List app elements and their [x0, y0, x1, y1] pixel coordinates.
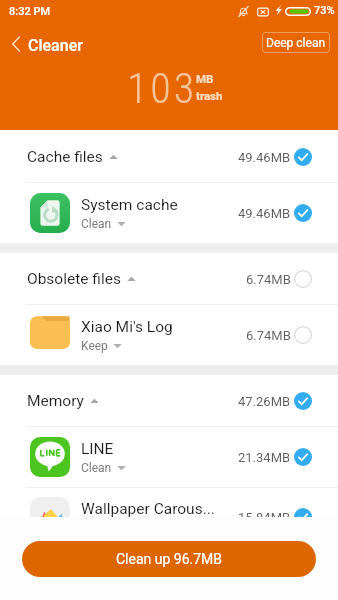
button[interactable]: Clean up 96.7MB [22, 541, 316, 577]
staticText: Clean [81, 461, 112, 475]
staticText: 49.46MB [238, 150, 291, 165]
staticText: Cleaner [28, 36, 83, 55]
button[interactable]: Memory [0, 375, 338, 427]
staticText: LINE [81, 440, 114, 458]
staticText: MB [196, 72, 214, 85]
button[interactable]: Selected [294, 204, 312, 222]
button[interactable]: Selected [294, 392, 312, 410]
button[interactable]: Selected [294, 508, 312, 517]
staticText: 21.34MB [238, 450, 291, 465]
staticText: 47.26MB [238, 394, 291, 409]
staticText: Memory [27, 392, 84, 410]
button[interactable]: Back [2, 24, 30, 64]
button[interactable]: Not selected [294, 270, 312, 288]
staticText: 73% [314, 4, 335, 17]
button[interactable]: Not selected [294, 326, 312, 344]
staticText: 8:32 PM [9, 5, 51, 18]
staticText: 49.46MB [238, 206, 291, 221]
button[interactable]: Xiao Mi's Log [0, 305, 338, 365]
staticText: 6.74MB [246, 272, 291, 287]
button[interactable]: LINE [0, 427, 338, 487]
staticText: Clean [81, 217, 112, 231]
staticText: Wallpaper Carous... [81, 500, 215, 517]
button[interactable]: Selected [294, 148, 312, 166]
staticText: Xiao Mi's Log [81, 318, 173, 336]
staticText: Obsolete files [27, 270, 121, 288]
button[interactable]: System cache [0, 183, 338, 243]
button[interactable]: Deep clean [262, 32, 330, 53]
staticText: 103 [127, 64, 198, 113]
staticText: 6.74MB [246, 328, 291, 343]
staticText: trash [196, 89, 223, 102]
staticText: System cache [81, 196, 178, 214]
staticText: Keep [81, 339, 108, 353]
button[interactable]: Selected [294, 448, 312, 466]
staticText: Deep clean [266, 36, 326, 50]
staticText: Clean up 96.7MB [116, 551, 223, 567]
button[interactable]: Wallpaper Carous... [0, 487, 338, 517]
button[interactable]: Cache files [0, 131, 338, 183]
staticText: 15.84MB [238, 510, 291, 517]
staticText: Cache files [27, 148, 103, 166]
button[interactable]: Obsolete files [0, 253, 338, 305]
